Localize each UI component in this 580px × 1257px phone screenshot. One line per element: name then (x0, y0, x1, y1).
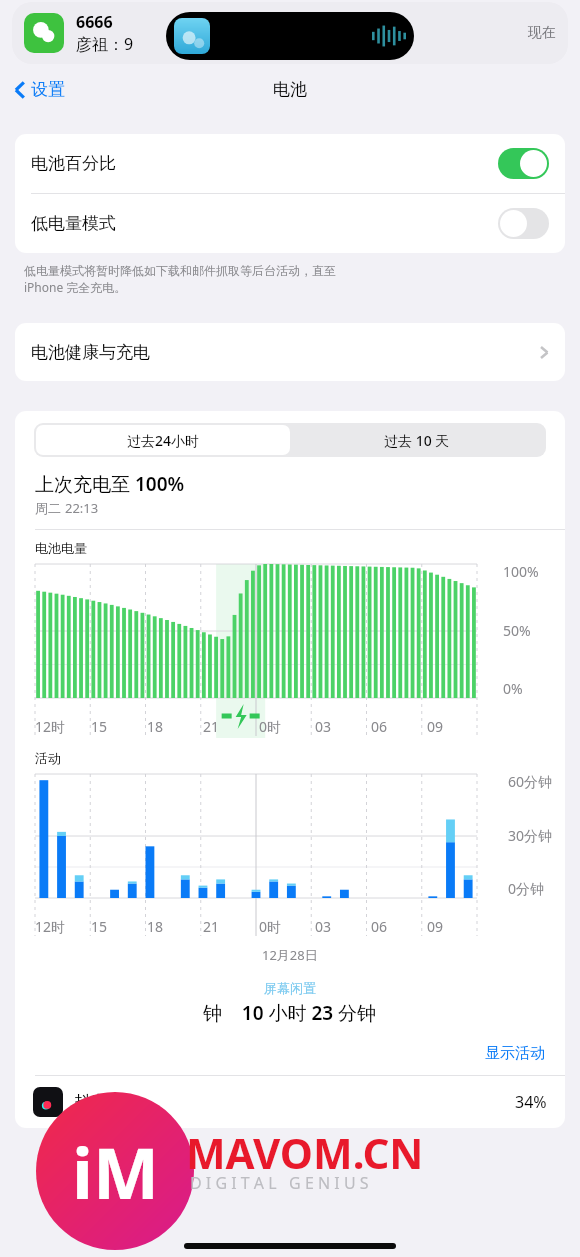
staticText: 0分钟 (508, 879, 545, 898)
staticText: D I G I T A L G E N I U S (190, 1172, 369, 1194)
staticText: 0时 (259, 917, 282, 936)
staticText: 18 (147, 917, 164, 936)
staticText: 30分钟 (508, 826, 553, 845)
button[interactable]: 显示活动 (485, 1044, 565, 1063)
staticText: 12时 (35, 717, 66, 736)
staticText: MAVOM.CN (186, 1124, 424, 1181)
button[interactable]: Now playing (166, 12, 414, 60)
staticText: 22:13 (65, 499, 99, 517)
staticText: 12月28日 (262, 946, 318, 964)
staticText: 过去 10 天 (384, 431, 450, 450)
button[interactable]: 低电量模式 (15, 194, 565, 253)
staticText: 屏幕闲置 (264, 980, 316, 996)
staticText: 电池百分比 (31, 153, 498, 174)
staticText: 21 (203, 717, 220, 736)
staticText: 34% (515, 1091, 547, 1113)
staticText: 100% (503, 562, 539, 581)
staticText: iM (72, 1124, 159, 1219)
staticText: 03 (315, 717, 332, 736)
staticText: 06 (371, 717, 388, 736)
staticText: 0时 (259, 717, 282, 736)
button[interactable]: 电池健康与充电 (15, 323, 565, 381)
staticText: 0% (503, 679, 523, 698)
button[interactable]: 过去24小时 (36, 425, 290, 455)
staticText: 低电量模式将暂时降低如下载和邮件抓取等后台活动，直至 iPhone 完全充电。 (24, 263, 336, 295)
button[interactable]: 抖音 (15, 1076, 565, 1128)
staticText: 21 (203, 917, 220, 936)
button[interactable]: On (498, 148, 549, 179)
staticText: 钟 10 小时 23 分钟 (203, 1000, 377, 1026)
staticText: 过去24小时 (127, 431, 200, 450)
staticText: 抖音 (75, 1092, 515, 1112)
staticText: 60分钟 (508, 772, 553, 791)
staticText: 03 (315, 917, 332, 936)
button[interactable]: 6666 (12, 2, 568, 64)
staticText: 电池健康与充电 (31, 342, 539, 363)
staticText: 上次充电至 100% (35, 471, 185, 497)
staticText: 6666 (76, 11, 113, 33)
staticText: 电池 (273, 79, 307, 100)
button[interactable]: 电池百分比 (15, 134, 565, 193)
staticText: 15 (91, 917, 108, 936)
staticText: 15 (91, 717, 108, 736)
staticText: 50% (503, 621, 531, 640)
staticText: 18 (147, 717, 164, 736)
staticText: 低电量模式 (31, 213, 498, 234)
button[interactable]: Off (498, 208, 549, 239)
staticText: 活动 (35, 750, 61, 766)
staticText: 12时 (35, 917, 66, 936)
staticText: 电池电量 (35, 540, 87, 556)
staticText: 周二 (35, 499, 65, 517)
button[interactable]: 设置 (8, 75, 71, 104)
staticText: 现在 (528, 24, 556, 42)
staticText: 彦祖：9 (76, 33, 134, 55)
button[interactable]: 过去 10 天 (290, 425, 544, 455)
staticText: 设置 (31, 79, 65, 100)
staticText: 09 (427, 917, 444, 936)
staticText: 09 (427, 717, 444, 736)
staticText: 06 (371, 917, 388, 936)
